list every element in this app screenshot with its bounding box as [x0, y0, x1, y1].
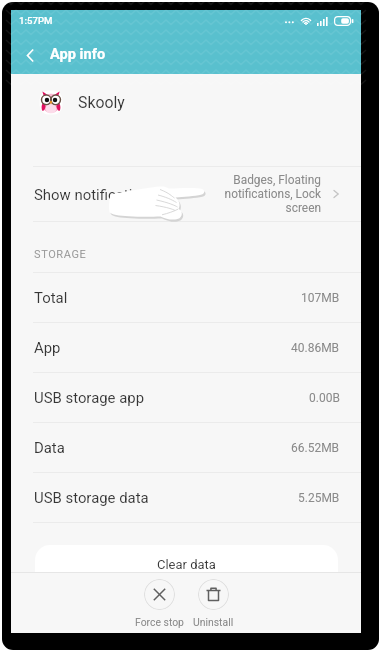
button[interactable]: Uninstall — [186, 573, 240, 633]
staticText: 107MB — [301, 291, 340, 305]
button[interactable]: App — [11, 323, 361, 372]
staticText: USB storage app — [34, 389, 144, 406]
button[interactable]: Skooly — [11, 74, 361, 130]
staticText: 66.52MB — [291, 441, 340, 455]
staticText: 5.25MB — [298, 491, 340, 505]
button[interactable]: Show notifications — [11, 167, 361, 221]
button[interactable]: USB storage data — [11, 473, 361, 522]
staticText: Show notifications — [34, 186, 157, 203]
staticText: Badges, Floating notifications, Lock scr… — [201, 173, 321, 215]
staticText: 40.86MB — [291, 341, 340, 355]
staticText: Clear data — [157, 557, 216, 572]
button[interactable]: USB storage app — [11, 373, 361, 422]
staticText: Uninstall — [193, 616, 234, 628]
staticText: App — [34, 339, 61, 356]
staticText: Data — [34, 439, 65, 456]
button[interactable]: Back — [11, 37, 49, 73]
staticText: 0.00B — [309, 391, 340, 405]
staticText: USB storage data — [34, 489, 149, 506]
staticText: App info — [50, 45, 106, 62]
staticText: Skooly — [78, 93, 125, 112]
staticText: Total — [34, 289, 68, 306]
button[interactable]: Force stop — [132, 573, 186, 633]
button[interactable]: Total — [11, 273, 361, 322]
button[interactable]: Data — [11, 423, 361, 472]
staticText: Force stop — [135, 616, 184, 628]
staticText: 1:57PM — [19, 15, 53, 26]
staticText: STORAGE — [34, 248, 87, 261]
button[interactable]: Clear data — [35, 545, 338, 605]
